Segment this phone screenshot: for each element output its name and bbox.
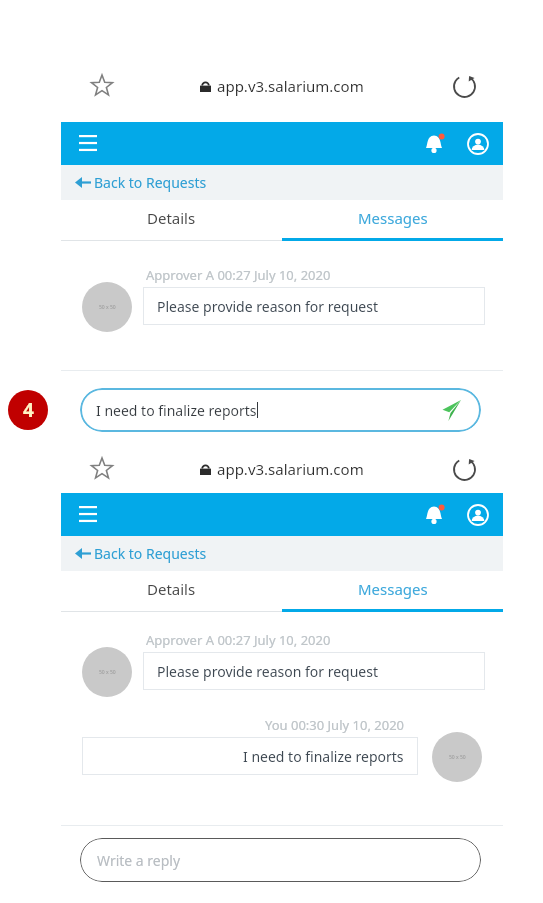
staticText: 50 x 50 — [449, 754, 466, 761]
button[interactable]: Notifications — [417, 498, 451, 532]
staticText: Please provide reason for request — [157, 297, 378, 316]
staticText: 50 x 50 — [99, 304, 116, 311]
staticText: Approver A 00:27 July 10, 2020 — [146, 631, 331, 649]
staticText: Messages — [358, 579, 428, 599]
button[interactable]: Menu — [71, 127, 105, 161]
staticText: Details — [147, 208, 196, 228]
button[interactable]: Notifications — [417, 127, 451, 161]
button[interactable]: Please provide reason for request — [143, 287, 485, 325]
button[interactable]: Details — [61, 571, 282, 612]
staticText: app.v3.salarium.com — [217, 459, 364, 479]
staticText: Back to Requests — [94, 173, 207, 192]
button[interactable]: Reload — [447, 452, 481, 486]
button[interactable]: Write a reply — [80, 838, 481, 882]
staticText: I need to finalize reports — [96, 401, 257, 420]
button[interactable]: Bookmark — [85, 452, 119, 486]
button[interactable]: Account — [461, 498, 495, 532]
button[interactable]: Reload — [447, 69, 481, 103]
button[interactable]: I need to finalize reports — [80, 388, 481, 432]
button[interactable]: Menu — [71, 498, 105, 532]
button[interactable]: Back to Requests — [61, 165, 503, 200]
staticText: Approver A 00:27 July 10, 2020 — [146, 266, 331, 284]
button[interactable]: Messages — [282, 571, 503, 612]
staticText: You 00:30 July 10, 2020 — [264, 716, 404, 734]
button[interactable]: 4 — [8, 390, 48, 430]
button[interactable]: Send — [435, 395, 465, 425]
staticText: Back to Requests — [94, 544, 207, 563]
staticText: app.v3.salarium.com — [217, 76, 364, 96]
button[interactable]: Messages — [282, 200, 503, 241]
staticText: Details — [147, 579, 196, 599]
staticText: Write a reply — [97, 851, 181, 870]
staticText: Please provide reason for request — [157, 662, 378, 681]
staticText: I need to finalize reports — [243, 747, 404, 766]
button[interactable]: Back to Requests — [61, 536, 503, 571]
button[interactable]: Bookmark — [85, 69, 119, 103]
staticText: 50 x 50 — [99, 669, 116, 676]
staticText: Messages — [358, 208, 428, 228]
button[interactable]: Details — [61, 200, 282, 241]
button[interactable]: I need to finalize reports — [82, 737, 418, 775]
staticText: 4 — [23, 397, 34, 423]
button[interactable]: Account — [461, 127, 495, 161]
button[interactable]: Please provide reason for request — [143, 652, 485, 690]
